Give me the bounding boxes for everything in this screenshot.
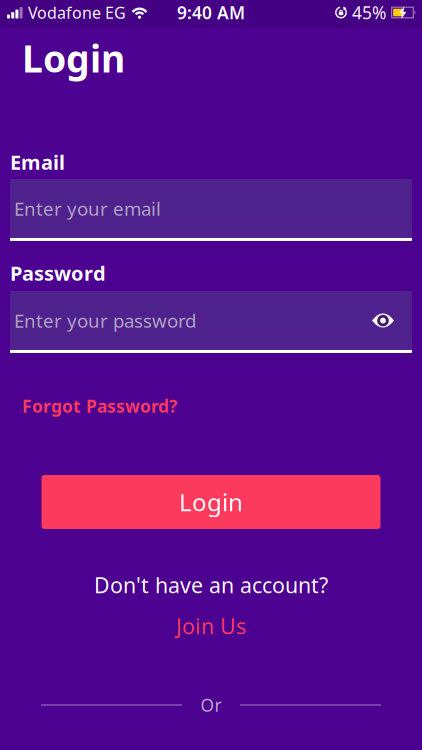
staticText: Forgot Password? bbox=[22, 394, 177, 417]
staticText: Or bbox=[200, 693, 221, 716]
staticText: Password bbox=[10, 260, 106, 286]
button[interactable]: Enter your email bbox=[10, 179, 412, 241]
button[interactable]: Enter your password bbox=[10, 291, 412, 353]
staticText: Enter your email bbox=[14, 196, 161, 221]
staticText: 9:40 AM bbox=[177, 1, 245, 24]
staticText: Join Us bbox=[176, 612, 246, 640]
button[interactable]: Show password bbox=[371, 312, 395, 328]
staticText: Vodafone EG bbox=[28, 2, 126, 23]
staticText: Don't have an account? bbox=[94, 571, 328, 599]
button[interactable]: Login bbox=[41, 475, 380, 529]
staticText: Login bbox=[179, 486, 243, 518]
staticText: 45% bbox=[352, 1, 386, 24]
button[interactable]: Join Us bbox=[176, 612, 246, 640]
staticText: Enter your password bbox=[14, 308, 196, 333]
button[interactable]: Forgot Password? bbox=[22, 394, 177, 417]
staticText: Email bbox=[10, 149, 65, 175]
staticText: Login bbox=[22, 33, 125, 83]
